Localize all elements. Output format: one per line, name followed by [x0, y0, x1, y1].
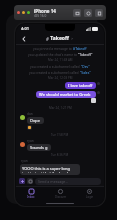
staticText: #: [46, 36, 49, 42]
button[interactable]: I love takeoff: [65, 82, 96, 89]
button[interactable]: Rotate: [84, 9, 92, 17]
button[interactable]: Discover: [46, 187, 75, 201]
staticText: "Sales": [80, 70, 91, 74]
staticText: Tue 7:58 PM: [51, 133, 69, 137]
button[interactable]: Add: [19, 178, 25, 184]
staticText: Dope: [30, 118, 41, 123]
button[interactable]: [27, 125, 32, 130]
button[interactable]: Maximize: [27, 11, 30, 14]
staticText: ryan: [27, 139, 34, 143]
button[interactable]: Back: [20, 33, 100, 44]
button[interactable]: Close: [17, 11, 20, 14]
button[interactable]: Avatar ryan: [20, 142, 25, 147]
staticText: Inbox: [27, 195, 35, 199]
button[interactable]: Send a message...: [35, 178, 101, 185]
staticText: "Dev": [81, 64, 90, 68]
button[interactable]: YOOO this is a super long text to test t…: [20, 164, 80, 175]
staticText: Send a message...: [38, 179, 69, 184]
button[interactable]: Minimize: [22, 11, 25, 14]
staticText: 4:01: [21, 26, 29, 31]
staticText: Mar 24, 11:48 AM: [48, 58, 73, 62]
button[interactable]: Dope: [27, 117, 44, 124]
staticText: you created a subchannel called: [30, 64, 81, 68]
button[interactable]: Avatar dan: [20, 115, 25, 120]
staticText: >: [71, 36, 74, 41]
staticText: iOS 16.0: [34, 14, 47, 18]
button[interactable]: Sounds g: [27, 144, 51, 151]
staticText: dan: [27, 112, 33, 116]
staticText: YOOO this is a super long text to test t…: [22, 166, 78, 173]
staticText: you pinned a message to: [33, 46, 73, 50]
staticText: ryan: [21, 159, 28, 163]
staticText: #Takeoff: [73, 46, 87, 50]
button[interactable]: Home: [73, 9, 81, 17]
staticText: Takeoff: [49, 35, 69, 42]
button[interactable]: Back: [20, 35, 28, 43]
staticText: you updated the chat's name to: [28, 52, 78, 56]
staticText: Discover: [55, 195, 67, 199]
button[interactable]: Camera: [27, 178, 33, 184]
button[interactable]: Inbox: [16, 187, 46, 201]
staticText: "Takeoff": [78, 52, 93, 56]
staticText: Mar 24, 1:21 PM: [49, 106, 72, 110]
button[interactable]: We should market to Greek life: [36, 91, 96, 98]
staticText: Sounds g: [30, 145, 48, 150]
staticText: you created a subchannel called: [29, 70, 80, 74]
staticText: iPhone 14: [34, 8, 56, 14]
button[interactable]: Screenshot: [95, 9, 103, 17]
staticText: Login: [86, 195, 94, 199]
staticText: Tue 8:36 PM: [51, 153, 69, 157]
staticText: We should market to Greek life: [39, 92, 93, 97]
staticText: I love takeoff: [68, 83, 93, 88]
staticText: Mar 24, 12:03 PM: [48, 76, 73, 80]
button[interactable]: Login: [75, 187, 104, 201]
